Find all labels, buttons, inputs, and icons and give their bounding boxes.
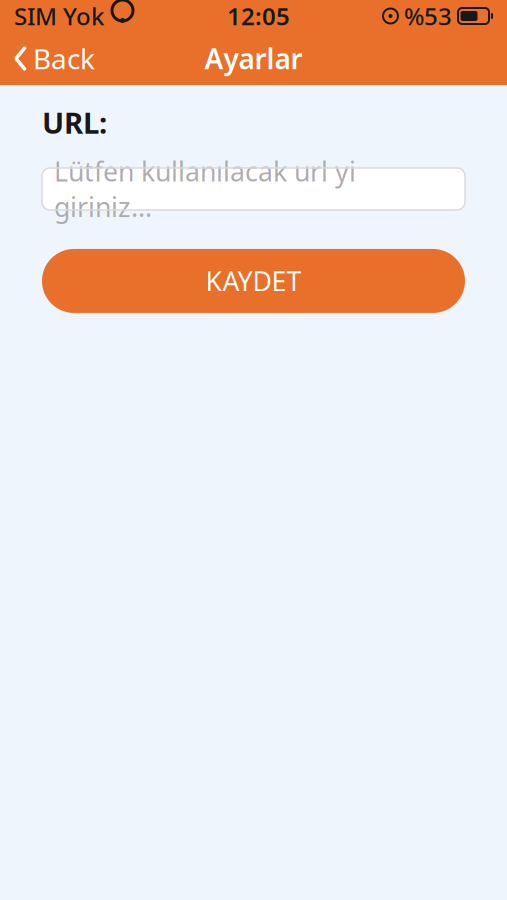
button[interactable]: Back xyxy=(0,32,109,85)
staticText: Back xyxy=(33,40,95,77)
staticText: %53 xyxy=(404,0,452,32)
staticText: KAYDET xyxy=(205,263,301,299)
staticText: Lütfen kullanılacak url yi giriniz... xyxy=(54,153,356,224)
button[interactable]: KAYDET xyxy=(42,249,465,313)
staticText: Ayarlar xyxy=(204,40,302,77)
staticText: URL: xyxy=(42,103,107,142)
staticText: 12:05 xyxy=(227,0,290,32)
staticText: SIM Yok xyxy=(14,0,104,32)
